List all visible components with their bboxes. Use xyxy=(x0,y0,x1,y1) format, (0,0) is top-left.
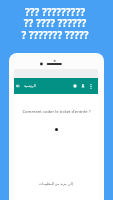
staticText: Comment coder le ticket d'entrée ? xyxy=(22,109,91,115)
staticText: الرئيسية xyxy=(24,84,36,88)
staticText: إلى مزيد من المعلومات xyxy=(39,181,73,186)
button[interactable]: Back xyxy=(14,78,22,94)
button[interactable]: More options xyxy=(87,78,94,94)
button[interactable]: Search xyxy=(71,78,79,94)
button[interactable]: Account xyxy=(79,78,87,94)
staticText: ??? ????????? ?? ???? ?????? ? ??????? ?… xyxy=(21,5,89,42)
